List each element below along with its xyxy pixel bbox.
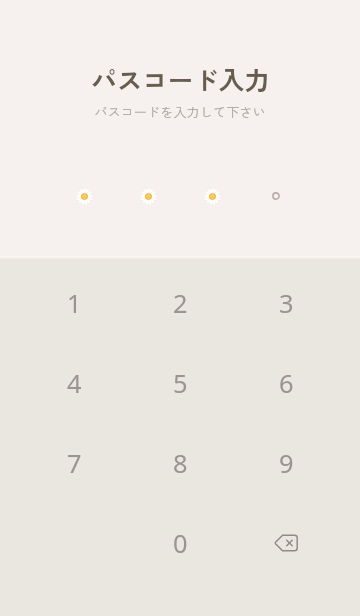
staticText: 1 xyxy=(67,286,82,321)
other: Delete xyxy=(264,521,308,565)
staticText: 0 xyxy=(173,526,188,561)
staticText: 7 xyxy=(67,446,82,481)
staticText: 5 xyxy=(173,366,188,401)
staticText: 3 xyxy=(279,286,294,321)
button[interactable]: 8 xyxy=(127,423,233,503)
button[interactable]: 9 xyxy=(233,423,339,503)
staticText: 4 xyxy=(67,366,82,401)
staticText: 6 xyxy=(279,366,294,401)
button[interactable]: 5 xyxy=(127,343,233,423)
staticText: パスコード入力 xyxy=(91,60,270,97)
button[interactable]: 6 xyxy=(233,343,339,423)
staticText: パスコードを入力して下さい xyxy=(94,102,266,121)
button[interactable]: 1 xyxy=(21,263,127,343)
button[interactable]: 3 xyxy=(233,263,339,343)
staticText: 2 xyxy=(173,286,188,321)
button[interactable]: 2 xyxy=(127,263,233,343)
staticText: 8 xyxy=(173,446,188,481)
button[interactable]: 0 xyxy=(127,503,233,583)
button[interactable]: 7 xyxy=(21,423,127,503)
button[interactable]: Delete xyxy=(233,503,339,583)
button[interactable]: 4 xyxy=(21,343,127,423)
staticText: 9 xyxy=(279,446,294,481)
